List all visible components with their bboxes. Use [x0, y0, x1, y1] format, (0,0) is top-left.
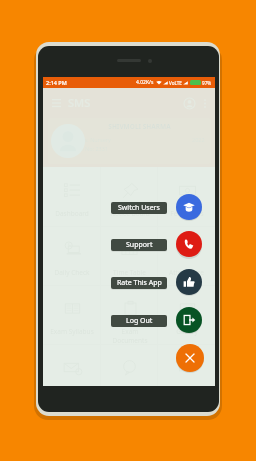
staticText: Support	[126, 240, 153, 250]
staticText: Fee Details	[170, 209, 204, 218]
staticText: Log Out	[126, 316, 153, 326]
button[interactable]: Support	[111, 239, 167, 251]
button[interactable]: Live Class	[158, 344, 215, 386]
staticText: VoLTE	[169, 80, 182, 86]
staticText: Gallery	[176, 327, 198, 336]
staticText: Rate This App	[117, 278, 162, 288]
button[interactable]: Account	[181, 95, 197, 111]
button[interactable]: Rate This App	[176, 269, 202, 295]
staticText: Notice Board	[110, 209, 150, 218]
staticText: 97%	[202, 80, 212, 86]
staticText: 2:14 PM	[46, 79, 67, 86]
button[interactable]: Attendance	[158, 226, 215, 285]
button[interactable]: Notice Board	[101, 167, 158, 226]
staticText: SMS	[68, 95, 91, 110]
button[interactable]: Log Out	[111, 315, 167, 327]
button[interactable]: Switch Users	[111, 202, 167, 214]
staticText: Class: Nursery	[74, 136, 111, 143]
button[interactable]: Log Out	[176, 307, 202, 333]
button[interactable]: Rate This App	[111, 277, 167, 289]
button[interactable]: Open navigation menu	[50, 96, 63, 109]
button[interactable]: Gallery	[158, 285, 215, 344]
staticText: 4.02K/s	[136, 79, 154, 86]
button[interactable]: Time Table	[101, 226, 158, 285]
staticText: Switch Users	[118, 203, 160, 213]
button[interactable]: Exam Documents	[101, 285, 158, 344]
staticText: Roll No: 2331	[74, 145, 109, 152]
button[interactable]: Support	[176, 231, 202, 257]
staticText: Attendance	[169, 268, 204, 277]
button[interactable]: Fee Details	[158, 167, 215, 226]
button[interactable]: Switch Users	[176, 194, 202, 220]
button[interactable]: Close menu	[176, 344, 204, 372]
